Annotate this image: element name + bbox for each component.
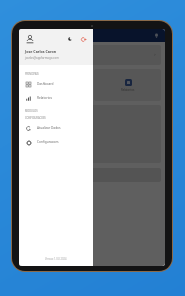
staticText: jcarlos@appfarmago.com (25, 56, 59, 60)
button[interactable]: Notifications (153, 32, 160, 39)
button[interactable]: Relatorios (94, 69, 161, 101)
button[interactable] (23, 168, 161, 182)
button[interactable]: Toggle dark mode (66, 35, 74, 43)
staticText: > (154, 53, 156, 57)
staticText: Versao 1.0.0 2024 (45, 257, 67, 261)
button[interactable] (23, 105, 161, 163)
button[interactable]: Relatorios (19, 91, 93, 105)
staticText: Atualizar Dados (37, 126, 61, 130)
staticText: Jose Carlos Caron (25, 49, 57, 54)
staticText: Relatorios (37, 96, 53, 100)
staticText: Configuracoes (37, 140, 59, 144)
staticText: CONFIGURACOES (25, 116, 46, 119)
button[interactable]: Ultima atualizacao (23, 45, 161, 65)
button[interactable]: Dashboard (19, 77, 93, 91)
button[interactable]: Dashboard (23, 69, 90, 101)
staticText: Ultima atualizacao (34, 53, 57, 57)
staticText: Relatorios (121, 88, 135, 92)
button[interactable]: Atualizar Dados (19, 121, 93, 135)
button[interactable]: Configuracoes (19, 135, 93, 149)
button[interactable]: Logout (79, 35, 87, 43)
staticText: MODULOS (25, 109, 38, 112)
staticText: PRINCIPAIS (25, 72, 39, 75)
staticText: Dashboard (37, 82, 54, 86)
